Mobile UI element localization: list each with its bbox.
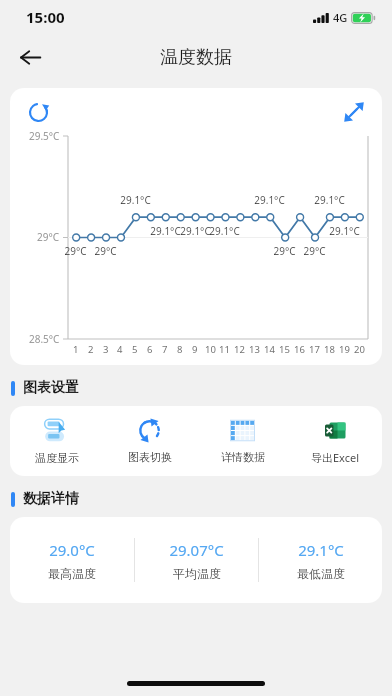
staticText: 18 <box>324 343 335 356</box>
staticText: 11 <box>219 343 230 356</box>
staticText: 29.5°C <box>29 129 60 143</box>
staticText: 29.1°C <box>120 193 151 207</box>
staticText: 7 <box>162 343 168 356</box>
staticText: 15 <box>279 343 290 356</box>
staticText: 29.1°C <box>298 540 344 560</box>
staticText: 16 <box>294 343 305 356</box>
staticText: 最低温度 <box>297 566 345 581</box>
staticText: 平均温度 <box>173 566 221 581</box>
staticText: 29.1°C <box>314 193 345 207</box>
staticText: 最高温度 <box>48 566 96 581</box>
staticText: 12 <box>234 343 245 356</box>
staticText: 29°C <box>37 230 60 244</box>
staticText: 29.1°C <box>209 224 240 238</box>
staticText: 29.1°C <box>180 224 211 238</box>
staticText: 6 <box>147 343 153 356</box>
staticText: 29°C <box>303 244 326 258</box>
staticText: 8 <box>177 343 183 356</box>
staticText: 9 <box>192 343 198 356</box>
button[interactable]: Back <box>8 35 52 79</box>
button[interactable]: Refresh <box>20 94 56 130</box>
staticText: 29°C <box>94 244 117 258</box>
button[interactable]: 导出Excel <box>289 406 382 476</box>
button[interactable]: 温度显示 <box>10 406 103 476</box>
staticText: 17 <box>309 343 320 356</box>
staticText: 29.1°C <box>329 224 360 238</box>
staticText: 29°C <box>273 244 296 258</box>
staticText: 图表切换 <box>128 450 172 464</box>
staticText: 29.07°C <box>169 540 224 560</box>
staticText: 29.0°C <box>49 540 95 560</box>
staticText: 2 <box>88 343 94 356</box>
staticText: 导出Excel <box>311 450 360 465</box>
button[interactable]: 详情数据 <box>196 406 289 476</box>
staticText: 14 <box>264 343 275 356</box>
staticText: 4G <box>333 10 348 25</box>
staticText: 29.1°C <box>254 193 285 207</box>
staticText: 13 <box>249 343 260 356</box>
staticText: 4 <box>117 343 123 356</box>
staticText: 29°C <box>64 244 87 258</box>
button[interactable]: Fullscreen <box>336 94 372 130</box>
staticText: 15:00 <box>26 7 65 27</box>
staticText: 3 <box>103 343 109 356</box>
staticText: 图表设置 <box>23 379 79 397</box>
button[interactable]: 29.0°C <box>10 517 134 603</box>
staticText: 温度数据 <box>160 46 232 69</box>
staticText: 10 <box>205 343 216 356</box>
staticText: 5 <box>132 343 138 356</box>
staticText: 20 <box>354 343 365 356</box>
staticText: 详情数据 <box>221 450 265 464</box>
staticText: 温度显示 <box>35 451 79 465</box>
button[interactable]: 图表切换 <box>103 406 196 476</box>
staticText: 数据详情 <box>23 490 79 508</box>
staticText: 29.1°C <box>150 224 181 238</box>
button[interactable]: 29.07°C <box>135 517 258 603</box>
button[interactable]: 29.1°C <box>259 517 382 603</box>
staticText: 19 <box>339 343 350 356</box>
staticText: 1 <box>73 343 79 356</box>
staticText: 28.5°C <box>29 332 60 346</box>
